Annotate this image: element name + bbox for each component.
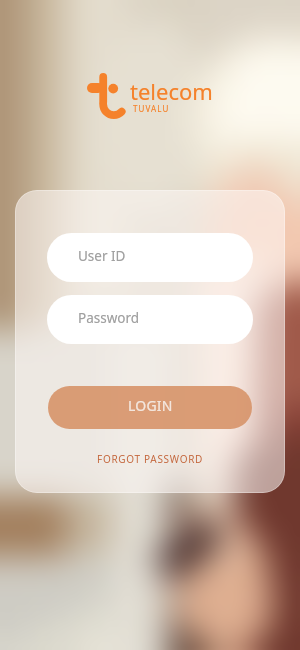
staticText: User ID <box>78 247 126 265</box>
button[interactable]: LOGIN <box>48 386 252 429</box>
staticText: FORGOT PASSWORD <box>97 452 204 466</box>
staticText: Password <box>78 309 140 327</box>
button[interactable]: User ID <box>47 233 253 282</box>
button[interactable]: Password <box>47 295 253 344</box>
staticText: TUVALU <box>133 103 170 114</box>
button[interactable]: FORGOT PASSWORD <box>15 448 285 470</box>
staticText: LOGIN <box>128 396 173 415</box>
staticText: telecom <box>130 76 213 106</box>
